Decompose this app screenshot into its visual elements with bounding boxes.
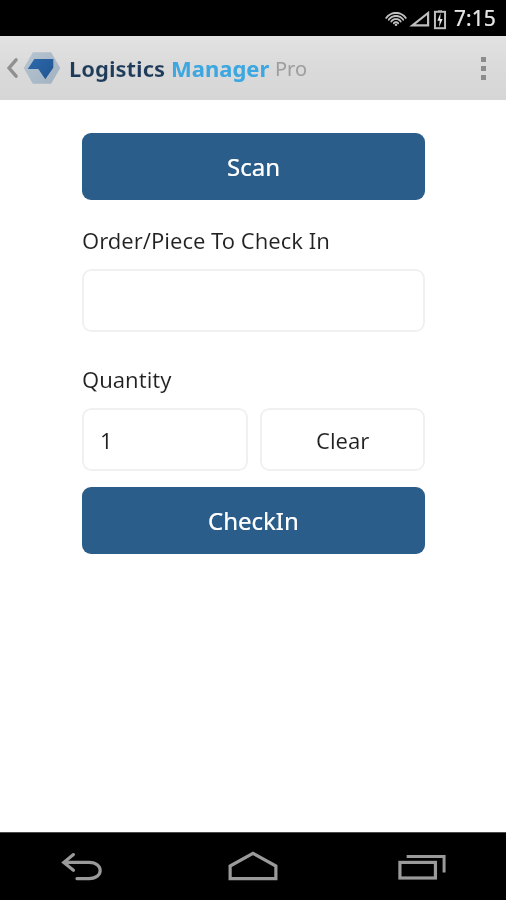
button[interactable]: More options xyxy=(460,36,506,100)
button[interactable]: Home xyxy=(168,832,337,900)
button[interactable]: Recent apps xyxy=(337,832,506,900)
button[interactable]: Order or piece to check in xyxy=(82,269,425,332)
staticText: Clear xyxy=(316,425,370,455)
staticText: Logistics xyxy=(69,53,171,83)
button[interactable]: Clear xyxy=(260,408,425,471)
staticText: Manager xyxy=(171,53,275,83)
staticText: 1 xyxy=(100,425,113,455)
staticText: Quantity xyxy=(82,364,172,394)
staticText: Scan xyxy=(227,150,280,183)
button[interactable]: Up, Logistics Manager Pro xyxy=(0,45,316,91)
button[interactable]: Back xyxy=(0,832,168,900)
staticText: Order/Piece To Check In xyxy=(82,225,330,255)
staticText: CheckIn xyxy=(208,504,299,537)
button[interactable]: Quantity xyxy=(82,408,248,471)
staticText: 7:15 xyxy=(454,4,496,33)
staticText: Pro xyxy=(275,55,308,82)
button[interactable]: CheckIn xyxy=(82,487,425,554)
button[interactable]: Scan xyxy=(82,133,425,200)
